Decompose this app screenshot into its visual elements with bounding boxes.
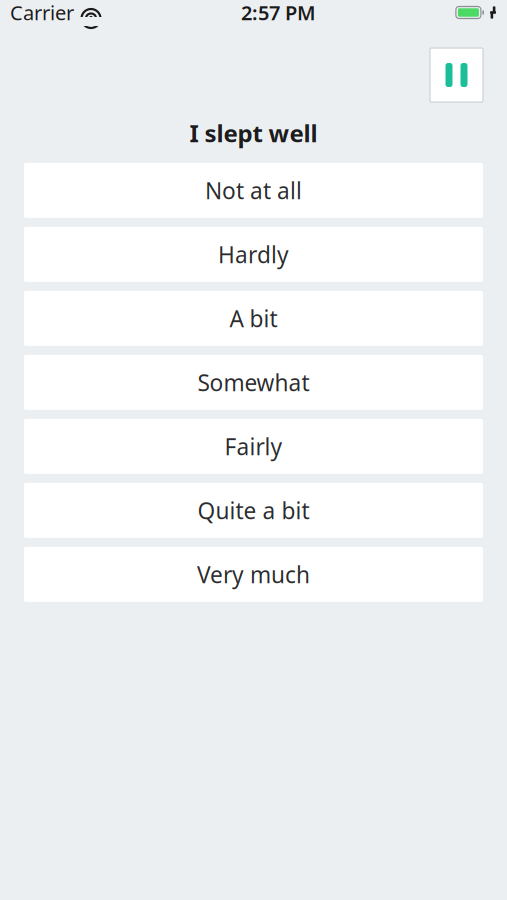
button[interactable]: Pause bbox=[430, 48, 483, 102]
staticText: I slept well bbox=[189, 117, 317, 149]
button[interactable]: Hardly bbox=[24, 227, 483, 282]
button[interactable]: Fairly bbox=[24, 419, 483, 474]
staticText: Quite a bit bbox=[197, 495, 309, 525]
button[interactable]: Quite a bit bbox=[24, 483, 483, 538]
button[interactable]: Not at all bbox=[24, 163, 483, 218]
staticText: Hardly bbox=[218, 239, 289, 269]
staticText: Fairly bbox=[224, 431, 282, 461]
staticText: Somewhat bbox=[197, 367, 309, 397]
button[interactable]: Very much bbox=[24, 547, 483, 602]
staticText: Not at all bbox=[205, 175, 302, 205]
button[interactable]: A bit bbox=[24, 291, 483, 346]
staticText: 2:57 PM bbox=[241, 0, 316, 26]
staticText: Carrier bbox=[10, 0, 74, 26]
button[interactable]: Somewhat bbox=[24, 355, 483, 410]
staticText: A bit bbox=[229, 303, 277, 333]
staticText: Very much bbox=[197, 559, 310, 589]
